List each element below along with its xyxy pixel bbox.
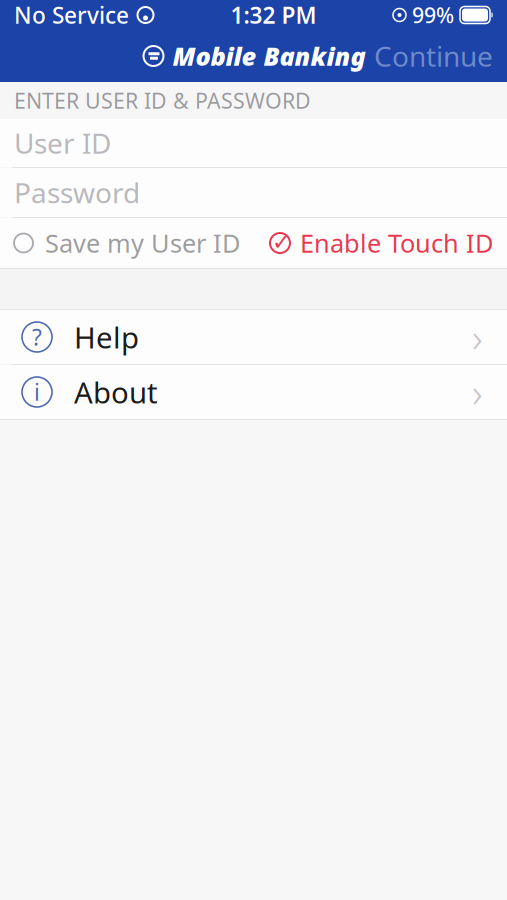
staticText: › — [472, 310, 483, 363]
staticText: ? — [32, 322, 42, 352]
staticText: No Service — [14, 0, 129, 30]
staticText: ✓ — [272, 229, 291, 255]
staticText: › — [472, 365, 483, 418]
staticText: i — [34, 377, 40, 407]
staticText: Help — [74, 317, 139, 356]
staticText: 1:32 PM — [230, 0, 316, 30]
staticText: 99% — [412, 1, 454, 29]
staticText: ENTER USER ID & PASSWORD — [14, 86, 311, 115]
staticText: About — [74, 372, 158, 411]
staticText: Continue — [374, 37, 493, 75]
button[interactable]: Save my User ID — [14, 216, 240, 270]
button[interactable]: ? — [0, 310, 507, 364]
staticText: Password — [14, 174, 140, 211]
staticText: Mobile Banking — [172, 39, 365, 73]
staticText: Enable Touch ID — [300, 226, 493, 260]
staticText: User ID — [14, 124, 111, 162]
button[interactable]: ✓ — [269, 216, 493, 270]
button[interactable]: Continue — [360, 29, 507, 83]
staticText: Save my User ID — [45, 226, 240, 260]
button[interactable]: i — [0, 365, 507, 419]
